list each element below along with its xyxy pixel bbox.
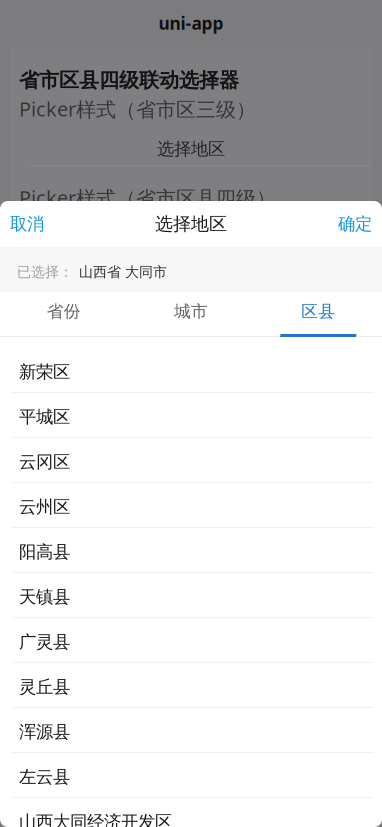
button[interactable]: 确定 xyxy=(328,201,382,247)
button[interactable]: 天镇县 xyxy=(0,573,382,618)
staticText: 山西大同经济开发区 xyxy=(19,811,172,827)
staticText: uni-app xyxy=(158,11,223,34)
button[interactable]: 选择地区 xyxy=(10,129,372,165)
staticText: 云州区 xyxy=(19,496,70,518)
button[interactable]: 阳高县 xyxy=(0,528,382,573)
staticText: 云冈区 xyxy=(19,451,70,473)
staticText: 新荣区 xyxy=(19,361,70,383)
staticText: 取消 xyxy=(10,213,44,235)
staticText: 阳高县 xyxy=(19,541,70,563)
button[interactable]: 区县 xyxy=(255,292,382,337)
staticText: 省市区县四级联动选择器 xyxy=(19,68,239,93)
button[interactable]: 新荣区 xyxy=(0,348,382,393)
button[interactable]: 云冈区 xyxy=(0,438,382,483)
staticText: 广灵县 xyxy=(19,631,70,653)
staticText: 平城区 xyxy=(19,406,70,428)
staticText: 左云县 xyxy=(19,766,70,788)
staticText: 灵丘县 xyxy=(19,676,70,698)
staticText: 选择地区 xyxy=(155,213,227,235)
button[interactable]: 山西大同经济开发区 xyxy=(0,798,382,827)
button[interactable]: 广灵县 xyxy=(0,618,382,663)
button[interactable]: 左云县 xyxy=(0,753,382,798)
button[interactable]: 省份 xyxy=(0,292,127,337)
staticText: 已选择： xyxy=(17,263,73,281)
staticText: 区县 xyxy=(301,301,335,322)
staticText: Picker样式（省市区三级） xyxy=(19,96,256,122)
staticText: 山西省 大同市 xyxy=(79,263,167,281)
button[interactable]: 灵丘县 xyxy=(0,663,382,708)
staticText: 省份 xyxy=(47,301,81,322)
staticText: 天镇县 xyxy=(19,586,70,608)
staticText: 城市 xyxy=(174,301,208,322)
button[interactable]: 取消 xyxy=(0,201,54,247)
button[interactable]: 浑源县 xyxy=(0,708,382,753)
staticText: Picker样式（省市区县四级） xyxy=(19,184,276,211)
button[interactable]: 平城区 xyxy=(0,393,382,438)
button[interactable]: 云州区 xyxy=(0,483,382,528)
staticText: 浑源县 xyxy=(19,721,70,743)
button[interactable]: 城市 xyxy=(127,292,255,337)
staticText: 选择地区 xyxy=(157,138,225,159)
staticText: 确定 xyxy=(338,213,372,235)
